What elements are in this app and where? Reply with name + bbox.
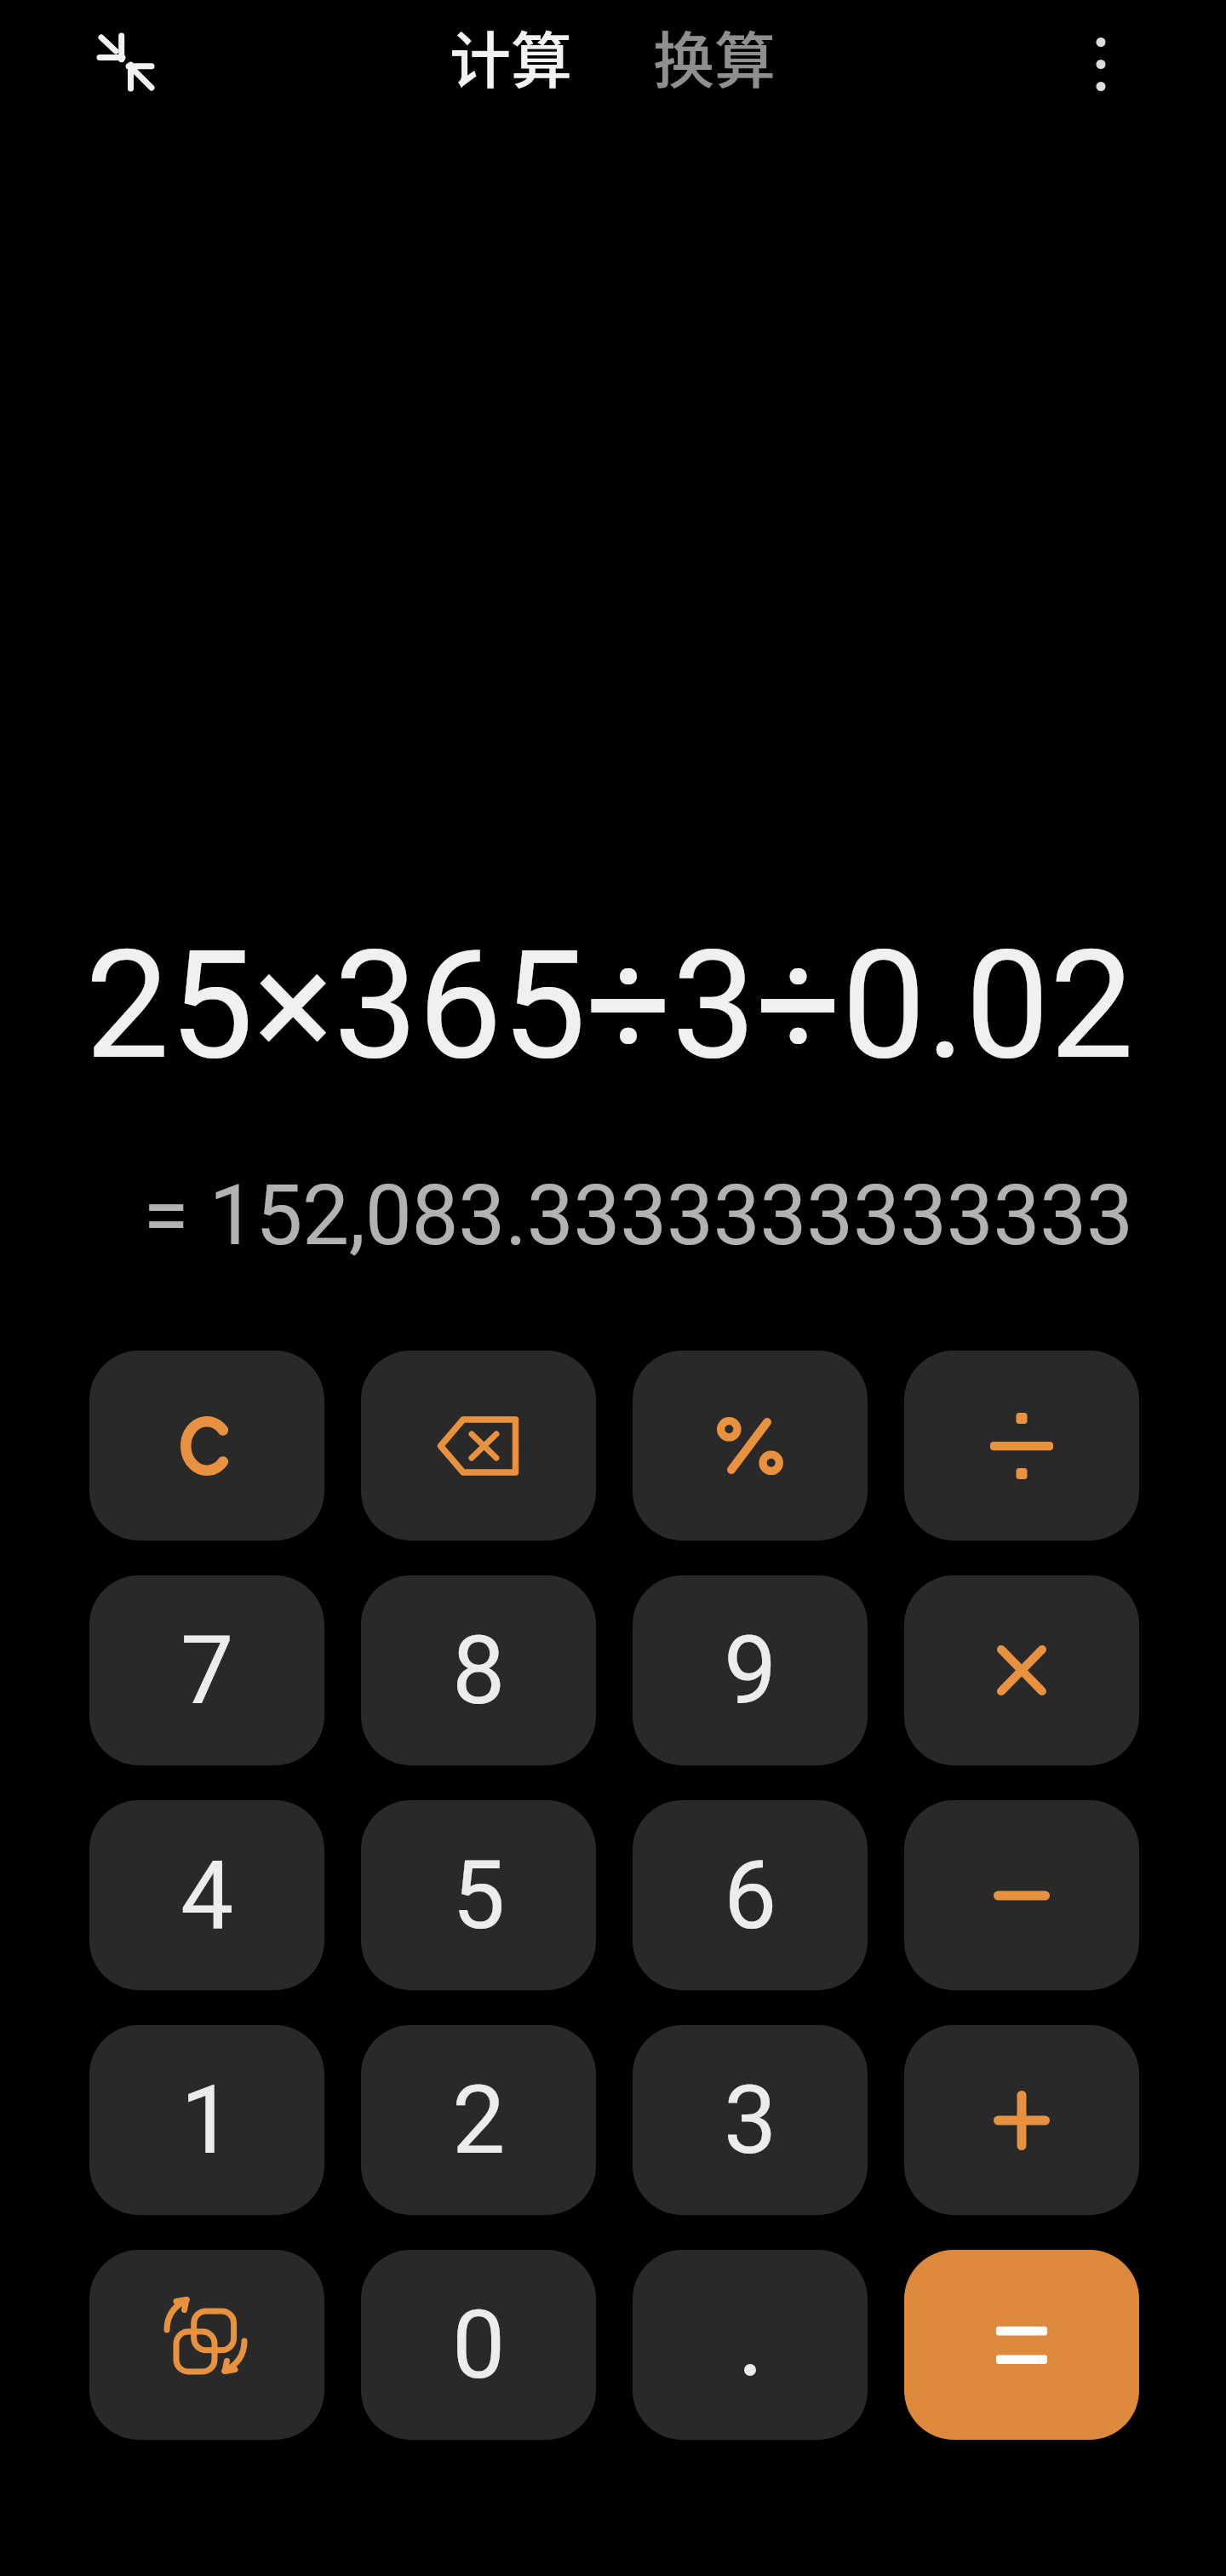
staticText: 9	[724, 1615, 777, 1726]
staticText: 2	[452, 2065, 506, 2176]
staticText: = 152,083.3333333333333	[143, 1167, 1133, 1265]
button[interactable]: 8	[361, 1575, 596, 1765]
button[interactable]	[1060, 21, 1142, 106]
button[interactable]	[361, 1351, 596, 1540]
button[interactable]: 4	[89, 1800, 324, 1990]
button[interactable]: 2	[361, 2025, 596, 2215]
button[interactable]: 6	[633, 1800, 868, 1990]
button[interactable]	[633, 2250, 868, 2440]
button[interactable]	[904, 1351, 1139, 1540]
staticText: 5	[452, 1840, 506, 1951]
button[interactable]: 7	[89, 1575, 324, 1765]
button[interactable]: 0	[361, 2250, 596, 2440]
button[interactable]	[904, 2250, 1139, 2440]
button[interactable]: 3	[633, 2025, 868, 2215]
button[interactable]: 5	[361, 1800, 596, 1990]
button[interactable]: 9	[633, 1575, 868, 1765]
button[interactable]	[633, 1351, 868, 1540]
button[interactable]: 换算	[653, 11, 776, 100]
button[interactable]	[72, 13, 179, 111]
button[interactable]: 计算	[450, 11, 573, 100]
button[interactable]	[904, 1575, 1139, 1765]
button[interactable]	[89, 2250, 324, 2440]
staticText: 7	[180, 1615, 234, 1726]
button[interactable]	[904, 2025, 1139, 2215]
button[interactable]: 1	[89, 2025, 324, 2215]
staticText: 0	[452, 2290, 506, 2401]
button[interactable]	[904, 1800, 1139, 1990]
staticText: 8	[452, 1615, 506, 1726]
button[interactable]	[89, 1351, 324, 1540]
staticText: 6	[724, 1840, 777, 1951]
staticText: 25×365÷3÷0.02	[85, 918, 1134, 1093]
staticText: 3	[724, 2065, 777, 2176]
staticText: 4	[180, 1840, 234, 1951]
staticText: 1	[180, 2065, 234, 2176]
